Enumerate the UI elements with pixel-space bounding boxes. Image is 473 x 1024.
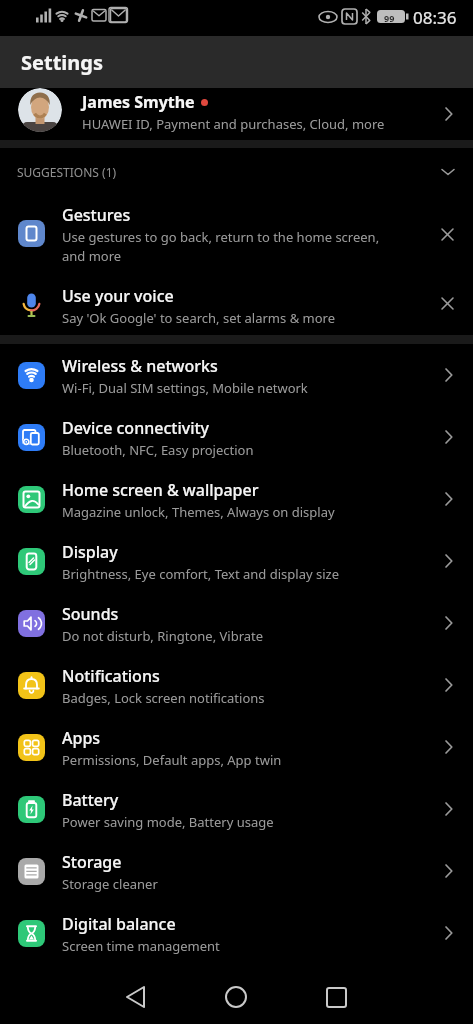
staticText: Digital balance (62, 913, 176, 935)
staticText: Gestures (62, 204, 131, 226)
staticText: HUAWEI ID, Payment and purchases, Cloud,… (82, 115, 385, 133)
button[interactable]: Use your voice (0, 272, 473, 335)
staticText: Magazine unlock, Themes, Always on displ… (62, 503, 335, 521)
button[interactable]: Apps (0, 716, 473, 778)
staticText: Brightness, Eye comfort, Text and displa… (62, 565, 339, 583)
staticText: Storage (62, 851, 122, 873)
button[interactable]: Display (0, 530, 473, 592)
staticText: 99 (384, 12, 395, 24)
staticText: Use gestures to go back, return to the h… (62, 228, 380, 265)
staticText: James Smythe (82, 91, 195, 113)
button[interactable] (157, 964, 315, 1024)
button[interactable]: Device connectivity (0, 406, 473, 468)
button[interactable]: Gestures (0, 196, 473, 272)
staticText: Sounds (62, 603, 119, 625)
button[interactable] (0, 964, 157, 1024)
staticText: Settings (21, 49, 103, 76)
staticText: Do not disturb, Ringtone, Vibrate (62, 627, 264, 645)
staticText: Badges, Lock screen notifications (62, 689, 265, 707)
button[interactable]: James Smythe (0, 88, 473, 140)
staticText: Power saving mode, Battery usage (62, 813, 274, 831)
button[interactable] (315, 964, 473, 1024)
button[interactable]: Storage (0, 840, 473, 902)
staticText: Bluetooth, NFC, Easy projection (62, 441, 254, 459)
staticText: Apps (62, 727, 101, 749)
staticText: Permissions, Default apps, App twin (62, 751, 282, 769)
staticText: Screen time management (62, 937, 220, 955)
staticText: Notifications (62, 665, 160, 687)
staticText: Wireless & networks (62, 355, 218, 377)
button[interactable]: Home screen & wallpaper (0, 468, 473, 530)
staticText: Wi-Fi, Dual SIM settings, Mobile network (62, 379, 308, 397)
staticText: Device connectivity (62, 417, 210, 439)
button[interactable]: Battery (0, 778, 473, 840)
staticText: Say 'Ok Google' to search, set alarms & … (62, 309, 335, 327)
button[interactable]: Wireless & networks (0, 344, 473, 406)
staticText: Storage cleaner (62, 875, 158, 893)
button[interactable]: Sounds (0, 592, 473, 654)
staticText: Home screen & wallpaper (62, 479, 259, 501)
staticText: 08:36 (413, 6, 457, 29)
staticText: Use your voice (62, 285, 174, 307)
staticText: Battery (62, 789, 119, 811)
staticText: SUGGESTIONS (1) (17, 164, 117, 180)
button[interactable]: Notifications (0, 654, 473, 716)
button[interactable]: Digital balance (0, 902, 473, 964)
button[interactable]: SUGGESTIONS (1) (0, 148, 473, 196)
staticText: Display (62, 541, 118, 563)
